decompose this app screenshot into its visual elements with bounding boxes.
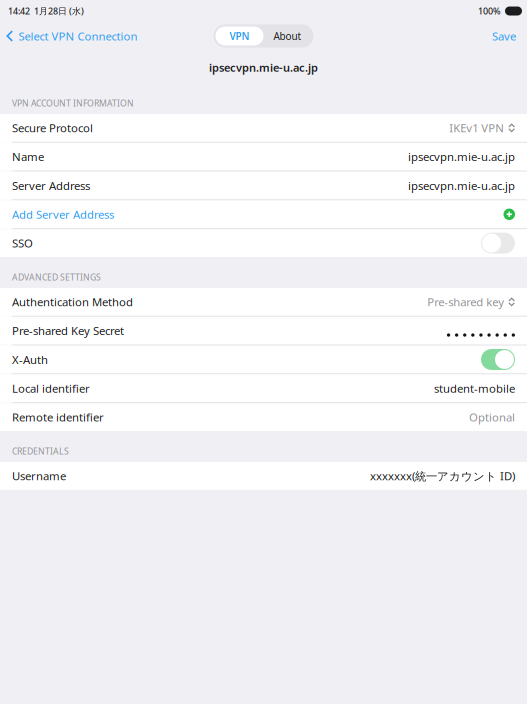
button[interactable]: Secure Protocol — [0, 114, 527, 142]
button[interactable]: Name — [0, 143, 527, 171]
staticText: CREDENTIALS — [12, 445, 69, 457]
staticText: X-Auth — [12, 352, 48, 367]
staticText: Add Server Address — [12, 207, 114, 222]
staticText: About — [273, 29, 301, 43]
staticText: Optional — [469, 409, 515, 425]
button[interactable]: Local identifier — [0, 374, 527, 402]
staticText: VPN — [229, 29, 249, 43]
staticText: ipsecvpn.mie-u.ac.jp — [209, 60, 318, 75]
button[interactable]: Add Server Address — [0, 200, 527, 228]
staticText: Save — [492, 28, 516, 44]
staticText: Pre-shared key — [427, 294, 504, 310]
staticText: ipsecvpn.mie-u.ac.jp — [408, 178, 515, 193]
button[interactable]: VPN — [215, 26, 263, 45]
staticText: Authentication Method — [12, 294, 133, 310]
staticText: Server Address — [12, 178, 90, 193]
staticText: Username — [12, 468, 66, 484]
button[interactable]: Username — [0, 462, 527, 490]
button[interactable]: Save — [492, 24, 527, 48]
staticText: 100% — [478, 5, 501, 17]
staticText: Remote identifier — [12, 409, 104, 425]
staticText: VPN ACCOUNT INFORMATION — [12, 97, 134, 109]
staticText: IKEv1 VPN — [449, 120, 504, 136]
button[interactable]: About — [263, 26, 311, 45]
button[interactable]: Remote identifier — [0, 403, 527, 431]
staticText: Secure Protocol — [12, 120, 93, 136]
button[interactable]: X-Auth — [0, 346, 527, 373]
button[interactable]: Pre-shared Key Secret — [0, 317, 527, 345]
staticText: 14:42 1月28日 (水) — [8, 5, 84, 17]
staticText: student-mobile — [434, 381, 515, 396]
staticText: Pre-shared Key Secret — [12, 323, 124, 338]
staticText: xxxxxxx(統一アカウント ID) — [370, 468, 515, 484]
staticText: Select VPN Connection — [18, 28, 137, 44]
staticText: Name — [12, 149, 44, 164]
staticText: ADVANCED SETTINGS — [12, 271, 101, 283]
staticText: SSO — [12, 235, 33, 251]
staticText: Local identifier — [12, 381, 90, 396]
button[interactable]: SSO — [0, 229, 527, 257]
button[interactable]: Authentication Method — [0, 288, 527, 316]
button[interactable]: Server Address — [0, 172, 527, 199]
button[interactable]: Select VPN Connection — [0, 24, 137, 48]
staticText: ipsecvpn.mie-u.ac.jp — [408, 149, 515, 164]
